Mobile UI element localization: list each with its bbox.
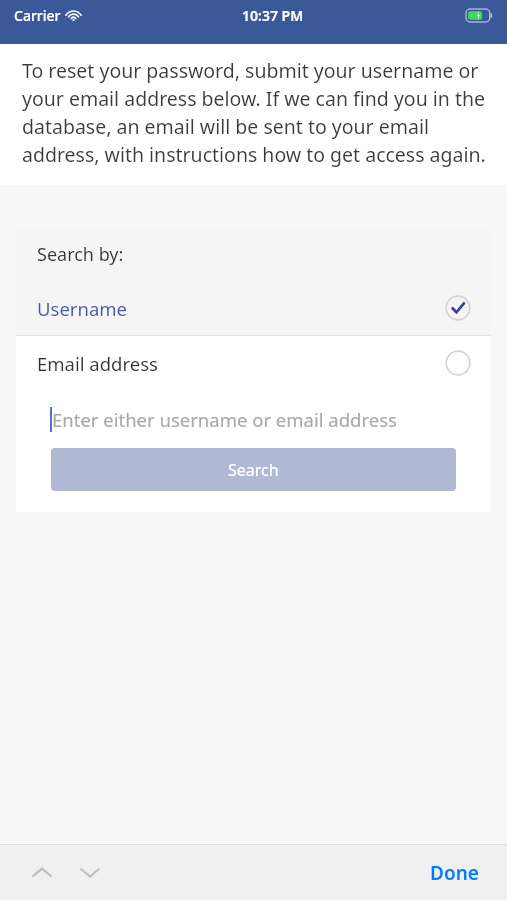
button[interactable]: Enter either username or email address [50, 390, 471, 448]
staticText: Username [37, 296, 128, 321]
button[interactable]: Search [51, 448, 456, 491]
staticText: To reset your password, submit your user… [22, 57, 489, 168]
staticText: Enter either username or email address [52, 407, 397, 432]
staticText: 10:37 PM [242, 6, 304, 25]
staticText: Carrier [14, 6, 61, 25]
button[interactable]: Email address [37, 336, 471, 390]
button[interactable]: Done [424, 852, 485, 894]
staticText: Email address [37, 351, 158, 376]
other: Username selected [445, 295, 471, 321]
other: Select Email address [445, 350, 471, 376]
staticText: Search by: [37, 242, 124, 267]
button[interactable]: Previous field [22, 853, 62, 893]
staticText: Search [228, 459, 279, 481]
button[interactable]: Username [37, 281, 471, 335]
button[interactable]: Next field [70, 853, 110, 893]
staticText: Done [430, 860, 479, 886]
